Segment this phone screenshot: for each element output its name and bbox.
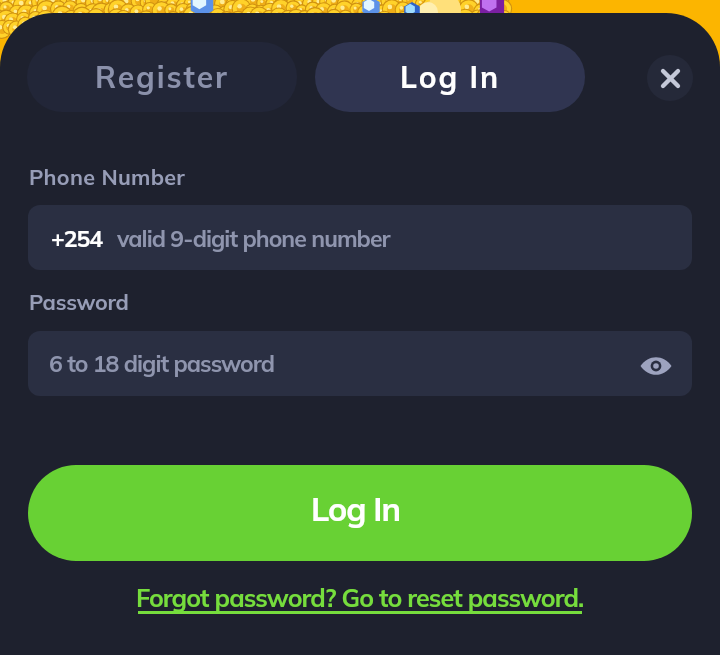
button[interactable]: 6 to 18 digit password (28, 331, 692, 396)
staticText: Password (29, 288, 129, 315)
button[interactable]: +254 (28, 205, 692, 270)
staticText: 6 to 18 digit password (49, 349, 274, 378)
staticText: Phone Number (29, 163, 186, 190)
button[interactable]: Log In (28, 465, 692, 561)
staticText: Forgot password? Go to reset password. (136, 582, 584, 613)
staticText: Log In (400, 58, 501, 96)
button[interactable]: Close (647, 55, 693, 101)
button[interactable]: Log In (315, 42, 585, 112)
button[interactable]: Forgot password? Go to reset password. (120, 580, 600, 614)
button[interactable]: Show password (636, 346, 676, 386)
button[interactable]: Register (27, 42, 297, 112)
staticText: valid 9-digit phone number (117, 224, 390, 253)
staticText: Register (95, 58, 229, 96)
staticText: +254 (51, 224, 103, 253)
staticText: Log In (311, 488, 400, 529)
